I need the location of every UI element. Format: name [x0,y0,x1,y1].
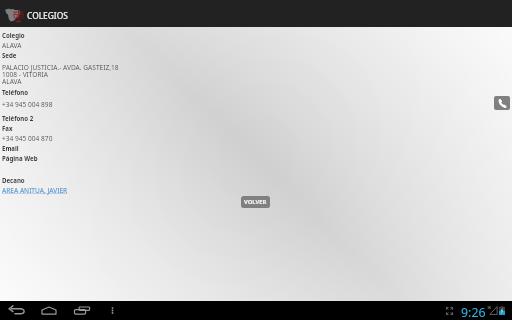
button[interactable]: Home [37,303,61,318]
staticText: Sede [2,51,17,59]
button[interactable]: Expand [445,306,454,316]
staticText: COLEGIOS [27,10,68,21]
staticText: ALAVA [2,41,22,50]
staticText: 1008 - VITORIA [2,70,49,79]
staticText: Email [2,144,19,152]
staticText: Decano [2,176,25,184]
staticText: Fax [2,124,13,132]
staticText: 9:26 [461,304,486,320]
staticText: ALAVA [2,77,22,86]
staticText: AREA ANITUA, JAVIER [2,186,68,195]
staticText: +34 945 004 898 [2,100,53,109]
staticText: VOLVER [244,198,267,206]
button[interactable]: Back [5,303,29,318]
button[interactable]: Llamar [494,96,510,110]
staticText: Página Web [2,154,38,162]
staticText: Teléfono 2 [2,114,34,122]
button[interactable]: Recent apps [70,303,94,318]
button[interactable]: AREA ANITUA, JAVIER [2,186,68,195]
staticText: Colegio [2,31,25,39]
staticText: +34 945 004 870 [2,134,53,143]
button[interactable]: VOLVER [241,196,270,208]
staticText: PALACIO JUSTICIA.- AVDA. GASTEIZ,18 [2,63,119,72]
staticText: Teléfono [2,88,29,96]
button[interactable]: More options [104,303,121,318]
